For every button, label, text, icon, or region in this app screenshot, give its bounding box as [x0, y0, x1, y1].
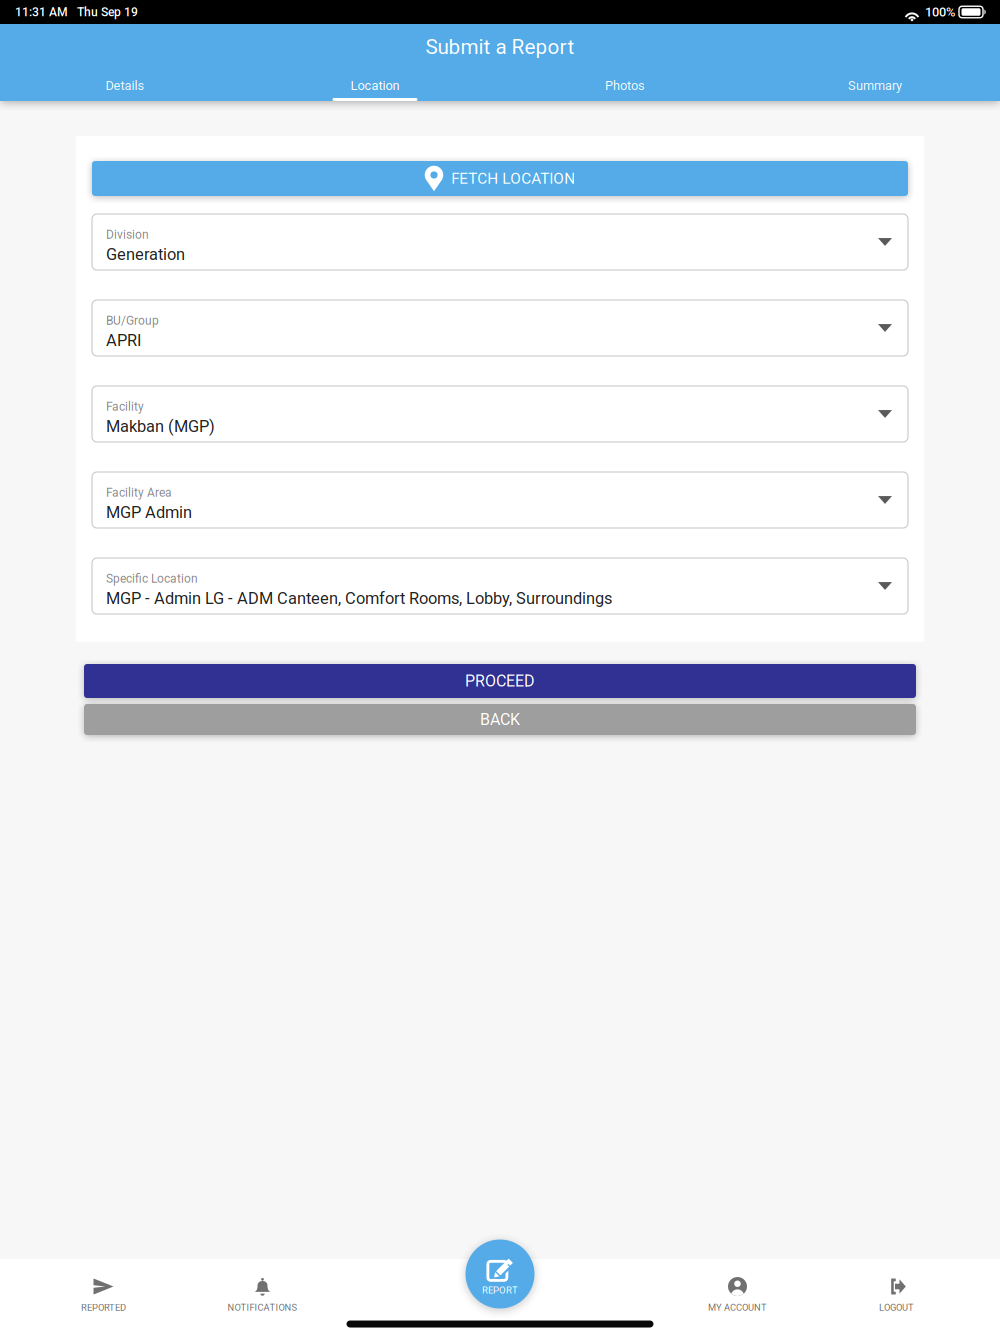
button[interactable]: Details: [0, 70, 250, 101]
staticText: MGP Admin: [106, 503, 192, 522]
button[interactable]: BACK: [84, 704, 916, 735]
staticText: Photos: [605, 78, 645, 93]
button[interactable]: FETCH LOCATION: [92, 161, 908, 196]
staticText: BU/Group: [106, 314, 159, 328]
staticText: Division: [106, 228, 149, 242]
staticText: Facility: [106, 400, 144, 414]
staticText: REPORTED: [81, 1302, 126, 1313]
staticText: BACK: [480, 710, 520, 729]
staticText: NOTIFICATIONS: [227, 1302, 297, 1313]
button[interactable]: Location: [250, 70, 500, 101]
button[interactable]: MY ACCOUNT: [658, 1259, 817, 1334]
staticText: 100%: [925, 4, 955, 19]
button[interactable]: Report: [465, 1239, 534, 1308]
staticText: Generation: [106, 245, 185, 264]
staticText: REPORT: [482, 1284, 518, 1296]
button[interactable]: LOGOUT: [817, 1259, 976, 1334]
staticText: Thu Sep 19: [77, 5, 138, 19]
staticText: MY ACCOUNT: [708, 1302, 767, 1313]
staticText: APRI: [106, 331, 141, 350]
button[interactable]: Summary: [750, 70, 1000, 101]
staticText: Specific Location: [106, 572, 198, 586]
button[interactable]: PROCEED: [84, 664, 916, 698]
staticText: LOGOUT: [879, 1302, 914, 1313]
staticText: Submit a Report: [425, 35, 574, 59]
button[interactable]: Division: [92, 214, 908, 270]
button[interactable]: Facility: [92, 386, 908, 442]
staticText: MGP - Admin LG - ADM Canteen, Comfort Ro…: [106, 589, 612, 608]
button[interactable]: BU/Group: [92, 300, 908, 356]
button[interactable]: Photos: [500, 70, 750, 101]
staticText: Makban (MGP): [106, 417, 215, 436]
staticText: Summary: [848, 78, 902, 93]
staticText: Details: [105, 78, 144, 93]
staticText: Location: [350, 78, 399, 93]
staticText: 11:31 AM: [15, 5, 68, 19]
staticText: FETCH LOCATION: [451, 169, 575, 187]
staticText: PROCEED: [465, 672, 535, 690]
button[interactable]: NOTIFICATIONS: [183, 1259, 342, 1334]
button[interactable]: Facility Area: [92, 472, 908, 528]
staticText: Facility Area: [106, 486, 172, 500]
button[interactable]: REPORTED: [24, 1259, 183, 1334]
button[interactable]: Specific Location: [92, 558, 908, 614]
